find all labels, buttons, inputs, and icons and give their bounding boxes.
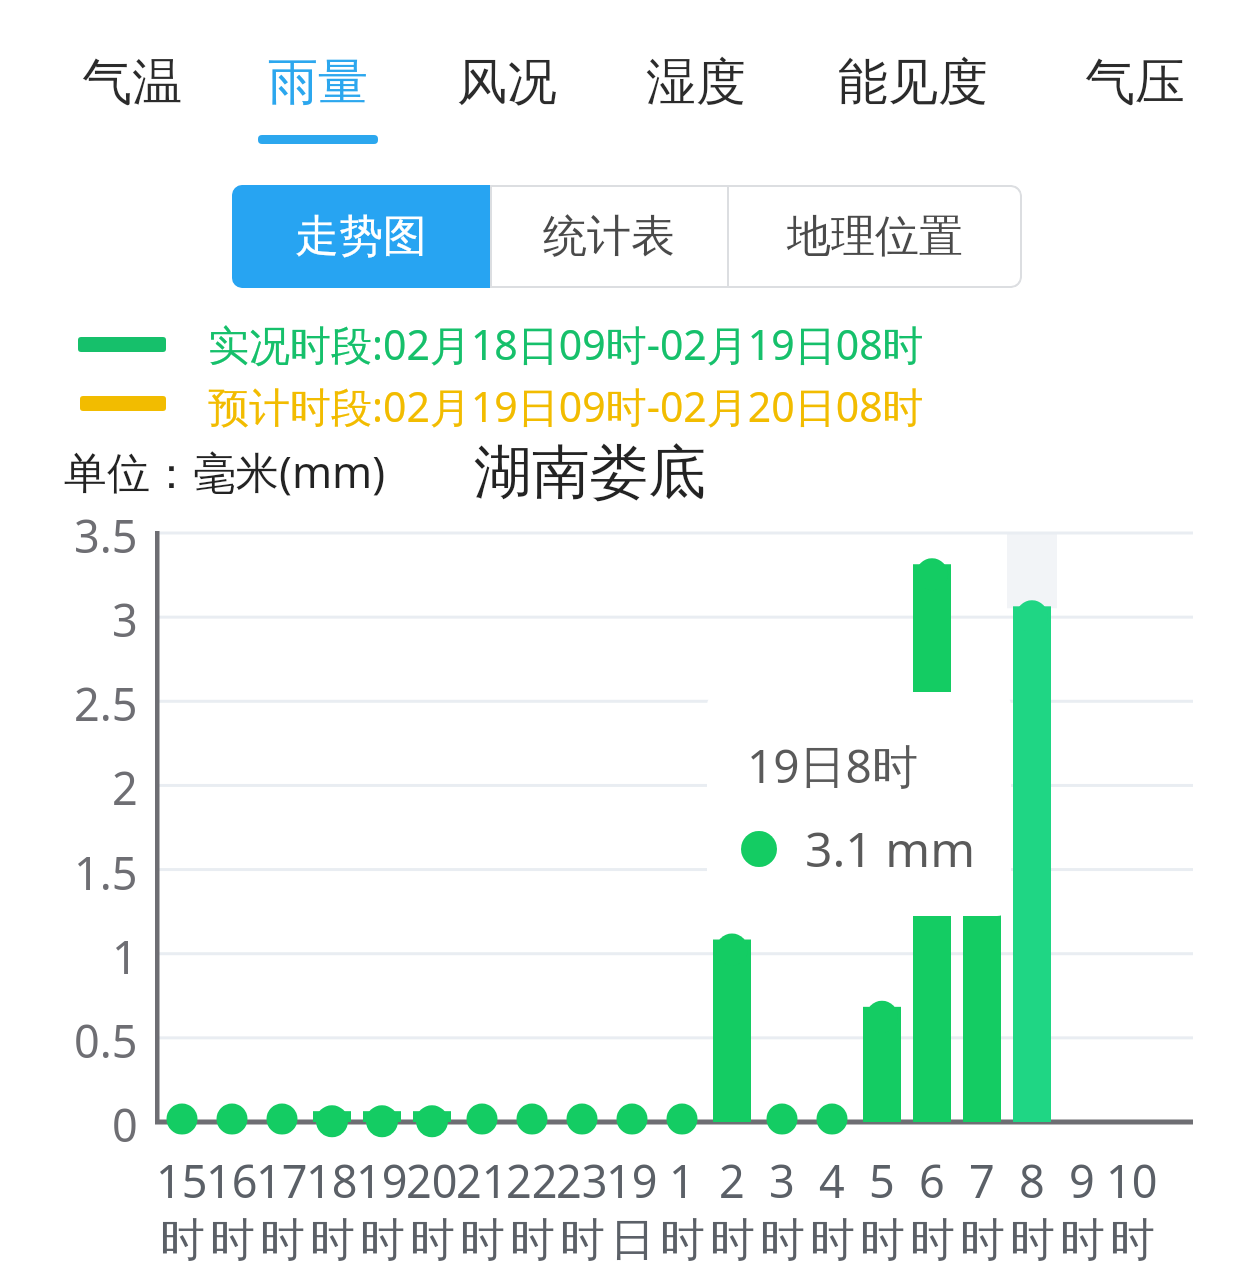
staticText: 16 <box>206 1150 258 1211</box>
staticText: 时 <box>260 1212 305 1269</box>
staticText: 实况时段:02月18日09时-02月19日08时 <box>208 316 924 372</box>
staticText: 8 <box>1019 1150 1045 1211</box>
staticText: 18 <box>306 1150 358 1211</box>
staticText: 时 <box>860 1212 905 1269</box>
staticText: 7 <box>969 1150 995 1211</box>
staticText: 1 <box>112 926 138 987</box>
staticText: 时 <box>910 1212 955 1269</box>
staticText: 时 <box>410 1212 455 1269</box>
staticText: 气温 <box>82 51 182 114</box>
staticText: 10 <box>1106 1150 1158 1211</box>
staticText: 能见度 <box>838 51 988 114</box>
staticText: 4 <box>819 1150 845 1211</box>
button[interactable]: 走势图 <box>232 185 490 288</box>
staticText: 雨量 <box>268 51 368 114</box>
staticText: 2 <box>112 757 138 818</box>
staticText: 0.5 <box>74 1010 138 1071</box>
staticText: 3 <box>112 589 138 650</box>
staticText: 20 <box>406 1150 458 1211</box>
staticText: 时 <box>160 1212 205 1269</box>
staticText: 地理位置 <box>787 209 963 264</box>
staticText: 时 <box>310 1212 355 1269</box>
staticText: 时 <box>210 1212 255 1269</box>
staticText: 时 <box>560 1212 605 1269</box>
button[interactable]: 风况 <box>450 42 564 122</box>
staticText: 1 <box>669 1150 695 1211</box>
staticText: 17 <box>256 1150 308 1211</box>
staticText: 时 <box>510 1212 555 1269</box>
staticText: 21 <box>456 1150 508 1211</box>
staticText: 时 <box>460 1212 505 1269</box>
staticText: 19日8时 <box>747 734 918 797</box>
staticText: 湿度 <box>646 51 746 114</box>
staticText: 时 <box>960 1212 1005 1269</box>
staticText: 湖南娄底 <box>474 436 706 509</box>
staticText: 风况 <box>457 51 557 114</box>
staticText: 19 <box>356 1150 408 1211</box>
staticText: 3 <box>769 1150 795 1211</box>
button[interactable]: 地理位置 <box>727 185 1022 288</box>
staticText: 9 <box>1069 1150 1095 1211</box>
staticText: 1.5 <box>74 842 138 903</box>
staticText: 气压 <box>1085 51 1185 114</box>
staticText: 19 <box>606 1150 658 1211</box>
button[interactable]: 气温 <box>75 42 189 122</box>
staticText: 统计表 <box>543 209 675 264</box>
button[interactable]: 雨量 <box>261 42 375 122</box>
button[interactable]: 能见度 <box>829 42 997 122</box>
staticText: 走势图 <box>295 209 427 264</box>
staticText: 时 <box>1010 1212 1055 1269</box>
staticText: 日 <box>610 1212 655 1269</box>
staticText: 时 <box>760 1212 805 1269</box>
staticText: 3.1 mm <box>805 816 976 881</box>
staticText: 时 <box>360 1212 405 1269</box>
staticText: 6 <box>919 1150 945 1211</box>
button[interactable]: 湿度 <box>639 42 753 122</box>
staticText: 2 <box>719 1150 745 1211</box>
staticText: 时 <box>710 1212 755 1269</box>
staticText: 时 <box>660 1212 705 1269</box>
staticText: 2.5 <box>74 673 138 734</box>
staticText: 23 <box>556 1150 608 1211</box>
staticText: 0 <box>112 1094 138 1155</box>
staticText: 时 <box>1110 1212 1155 1269</box>
button[interactable]: Data point 19日8时 3.1 mm <box>707 692 1011 916</box>
staticText: 22 <box>506 1150 558 1211</box>
staticText: 15 <box>156 1150 208 1211</box>
staticText: 时 <box>1060 1212 1105 1269</box>
staticText: 预计时段:02月19日09时-02月20日08时 <box>208 378 924 434</box>
button[interactable]: 统计表 <box>490 185 727 288</box>
button[interactable]: 气压 <box>1078 42 1192 122</box>
staticText: 单位：毫米(mm) <box>64 442 386 501</box>
staticText: 3.5 <box>74 505 138 566</box>
staticText: 时 <box>810 1212 855 1269</box>
staticText: 5 <box>869 1150 895 1211</box>
